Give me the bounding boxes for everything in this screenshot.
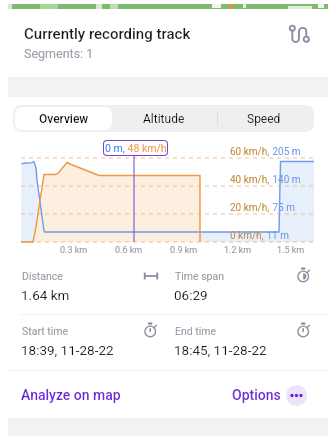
button[interactable]: Track details: [282, 18, 318, 54]
button[interactable]: Time span: [174, 266, 314, 312]
staticText: Currently recording track: [24, 25, 191, 43]
staticText: 06:29: [174, 287, 208, 303]
staticText: 20 km/h,: [230, 202, 270, 214]
staticText: 18:39, 11-28-22: [21, 342, 114, 358]
staticText: Speed: [247, 112, 281, 126]
staticText: 75 m: [270, 202, 295, 214]
staticText: Start time: [22, 325, 68, 337]
staticText: 0 km/h,: [230, 230, 264, 242]
staticText: End time: [175, 325, 217, 337]
staticText: 0.6 km: [115, 245, 143, 256]
staticText: Altitude: [143, 112, 185, 126]
staticText: Options: [232, 387, 281, 403]
staticText: 0 m,: [105, 142, 125, 154]
button[interactable]: Analyze on map: [14, 381, 128, 409]
staticText: Distance: [22, 270, 63, 282]
button[interactable]: Start time: [21, 321, 161, 367]
staticText: 0.9 km: [170, 245, 198, 256]
staticText: Analyze on map: [21, 387, 121, 403]
staticText: 40 km/h,: [230, 174, 270, 186]
button[interactable]: Distance: [21, 266, 161, 312]
button[interactable]: Options: [226, 381, 313, 409]
staticText: 1.64 km: [21, 287, 70, 303]
button[interactable]: Altitude: [114, 105, 214, 132]
button[interactable]: Speed: [214, 105, 314, 132]
staticText: Time span: [175, 270, 225, 282]
staticText: 60 km/h,: [230, 146, 270, 158]
staticText: 18:45, 11-28-22: [174, 342, 267, 358]
button[interactable]: Overview: [13, 105, 114, 132]
staticText: 140 m: [270, 174, 301, 186]
staticText: 1.5 km: [277, 245, 305, 256]
staticText: 0.3 km: [60, 245, 88, 256]
staticText: 1.2 km: [224, 245, 252, 256]
staticText: 205 m: [270, 146, 301, 158]
staticText: 48 km/h: [125, 142, 167, 154]
staticText: Segments: 1: [24, 46, 94, 61]
staticText: 11 m: [264, 230, 289, 242]
button[interactable]: End time: [174, 321, 314, 367]
staticText: Overview: [39, 112, 89, 126]
